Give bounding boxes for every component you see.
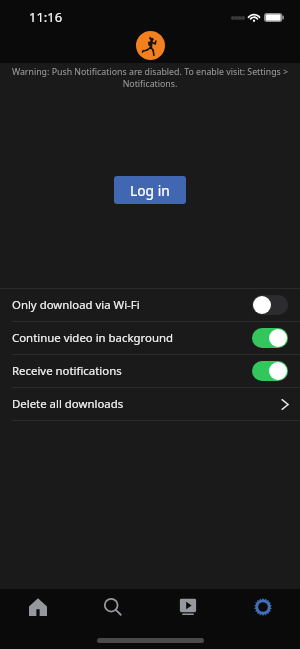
staticText: Delete all downloads <box>12 396 124 412</box>
button[interactable]: Off <box>252 295 288 315</box>
staticText: Log in <box>130 181 170 200</box>
staticText: 11:16 <box>29 8 63 26</box>
staticText: Warning: Push Notifications are disabled… <box>6 66 294 90</box>
button[interactable]: Settings <box>225 589 300 624</box>
button[interactable]: Continue video in background <box>0 322 300 354</box>
button[interactable]: Search <box>75 589 150 624</box>
button[interactable]: On <box>252 361 288 381</box>
button[interactable]: Delete all downloads <box>0 388 300 420</box>
staticText: Continue video in background <box>12 330 173 346</box>
staticText: Receive notifications <box>12 363 122 379</box>
button[interactable]: App logo <box>136 31 165 60</box>
button[interactable]: Log in <box>114 176 186 204</box>
button[interactable]: On <box>252 328 288 348</box>
button[interactable]: Home <box>0 589 75 624</box>
button[interactable]: Receive notifications <box>0 355 300 387</box>
button[interactable]: Only download via Wi-Fi <box>0 289 300 321</box>
other: Open <box>281 399 289 410</box>
staticText: Only download via Wi-Fi <box>12 297 140 313</box>
button[interactable]: Videos <box>150 589 225 624</box>
